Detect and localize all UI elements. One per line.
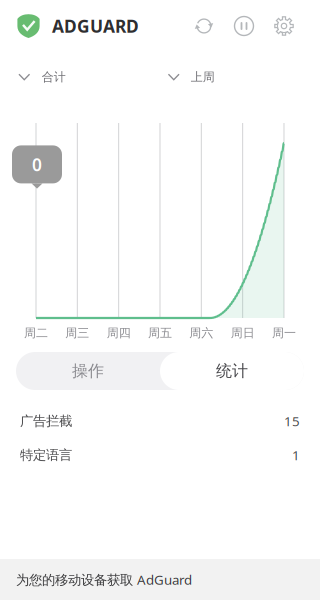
staticText: 上周: [191, 70, 215, 84]
staticText: 15: [284, 412, 300, 430]
button[interactable]: 广告拦截: [0, 404, 320, 438]
button[interactable]: Settings: [269, 11, 299, 41]
staticText: 周三: [65, 326, 89, 340]
button[interactable]: 特定语言: [0, 438, 320, 472]
staticText: 0: [32, 153, 42, 176]
staticText: 1: [292, 446, 300, 464]
staticText: 合计: [42, 70, 66, 84]
staticText: 周四: [107, 326, 131, 340]
staticText: 统计: [216, 361, 248, 381]
staticText: 周二: [24, 326, 48, 340]
button[interactable]: 为您的移动设备获取 AdGuard: [0, 559, 320, 600]
staticText: 操作: [72, 361, 104, 381]
button[interactable]: 操作: [16, 352, 160, 390]
staticText: 周五: [148, 326, 172, 340]
staticText: 周六: [189, 326, 213, 340]
button[interactable]: Pause protection: [229, 11, 259, 41]
staticText: 周一: [272, 326, 296, 340]
staticText: 广告拦截: [20, 413, 72, 429]
staticText: 特定语言: [20, 447, 72, 463]
button[interactable]: 合计: [18, 65, 168, 89]
staticText: 周日: [231, 326, 255, 340]
button[interactable]: 上周: [168, 65, 308, 89]
staticText: ADGUARD: [52, 14, 139, 37]
staticText: 为您的移动设备获取 AdGuard: [16, 571, 192, 588]
button[interactable]: 统计: [160, 352, 304, 390]
button[interactable]: Refresh: [189, 11, 219, 41]
